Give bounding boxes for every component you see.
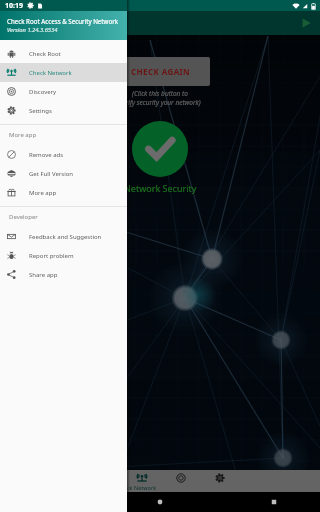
button[interactable]: More app: [0, 183, 127, 202]
staticText: Check Root: [29, 50, 61, 58]
button[interactable]: Check Network: [122, 470, 161, 492]
button[interactable]: Get Full Version: [0, 164, 127, 183]
button[interactable]: Discovery: [161, 470, 200, 492]
staticText: Report problem: [29, 252, 74, 260]
staticText: Version 1.24.3.6534: [7, 26, 58, 34]
staticText: Settings: [29, 107, 52, 115]
staticText: Get Full Version: [29, 170, 74, 178]
button[interactable]: CHECK AGAIN: [110, 57, 210, 86]
button[interactable]: Discovery: [0, 82, 127, 101]
staticText: Check Root Access & Security Network: [7, 17, 119, 25]
staticText: Feedback and Suggestion: [29, 233, 102, 241]
staticText: Check Network: [117, 484, 157, 491]
button[interactable]: Settings: [0, 101, 127, 120]
button[interactable]: Check Network: [0, 63, 127, 82]
staticText: Developer: [9, 213, 38, 221]
staticText: Discovery: [29, 88, 57, 96]
button[interactable]: Recents: [270, 498, 278, 506]
staticText: More app: [9, 131, 37, 139]
staticText: More app: [29, 189, 57, 197]
button[interactable]: Report problem: [0, 246, 127, 265]
staticText: Share app: [29, 271, 58, 279]
staticText: (Click this button to verify security yo…: [119, 89, 201, 107]
button[interactable]: Start scan: [300, 17, 312, 29]
button[interactable]: Remove ads: [0, 145, 127, 164]
staticText: CHECK AGAIN: [131, 66, 190, 77]
staticText: Network Security: [124, 182, 197, 194]
staticText: 10:19: [5, 1, 23, 11]
button[interactable]: Feedback and Suggestion: [0, 227, 127, 246]
button[interactable]: Home: [156, 498, 164, 506]
staticText: Remove ads: [29, 151, 64, 159]
staticText: Check Network: [29, 69, 72, 77]
button[interactable]: Check Root: [0, 44, 127, 63]
button[interactable]: Share app: [0, 265, 127, 284]
button[interactable]: Settings: [200, 470, 239, 492]
